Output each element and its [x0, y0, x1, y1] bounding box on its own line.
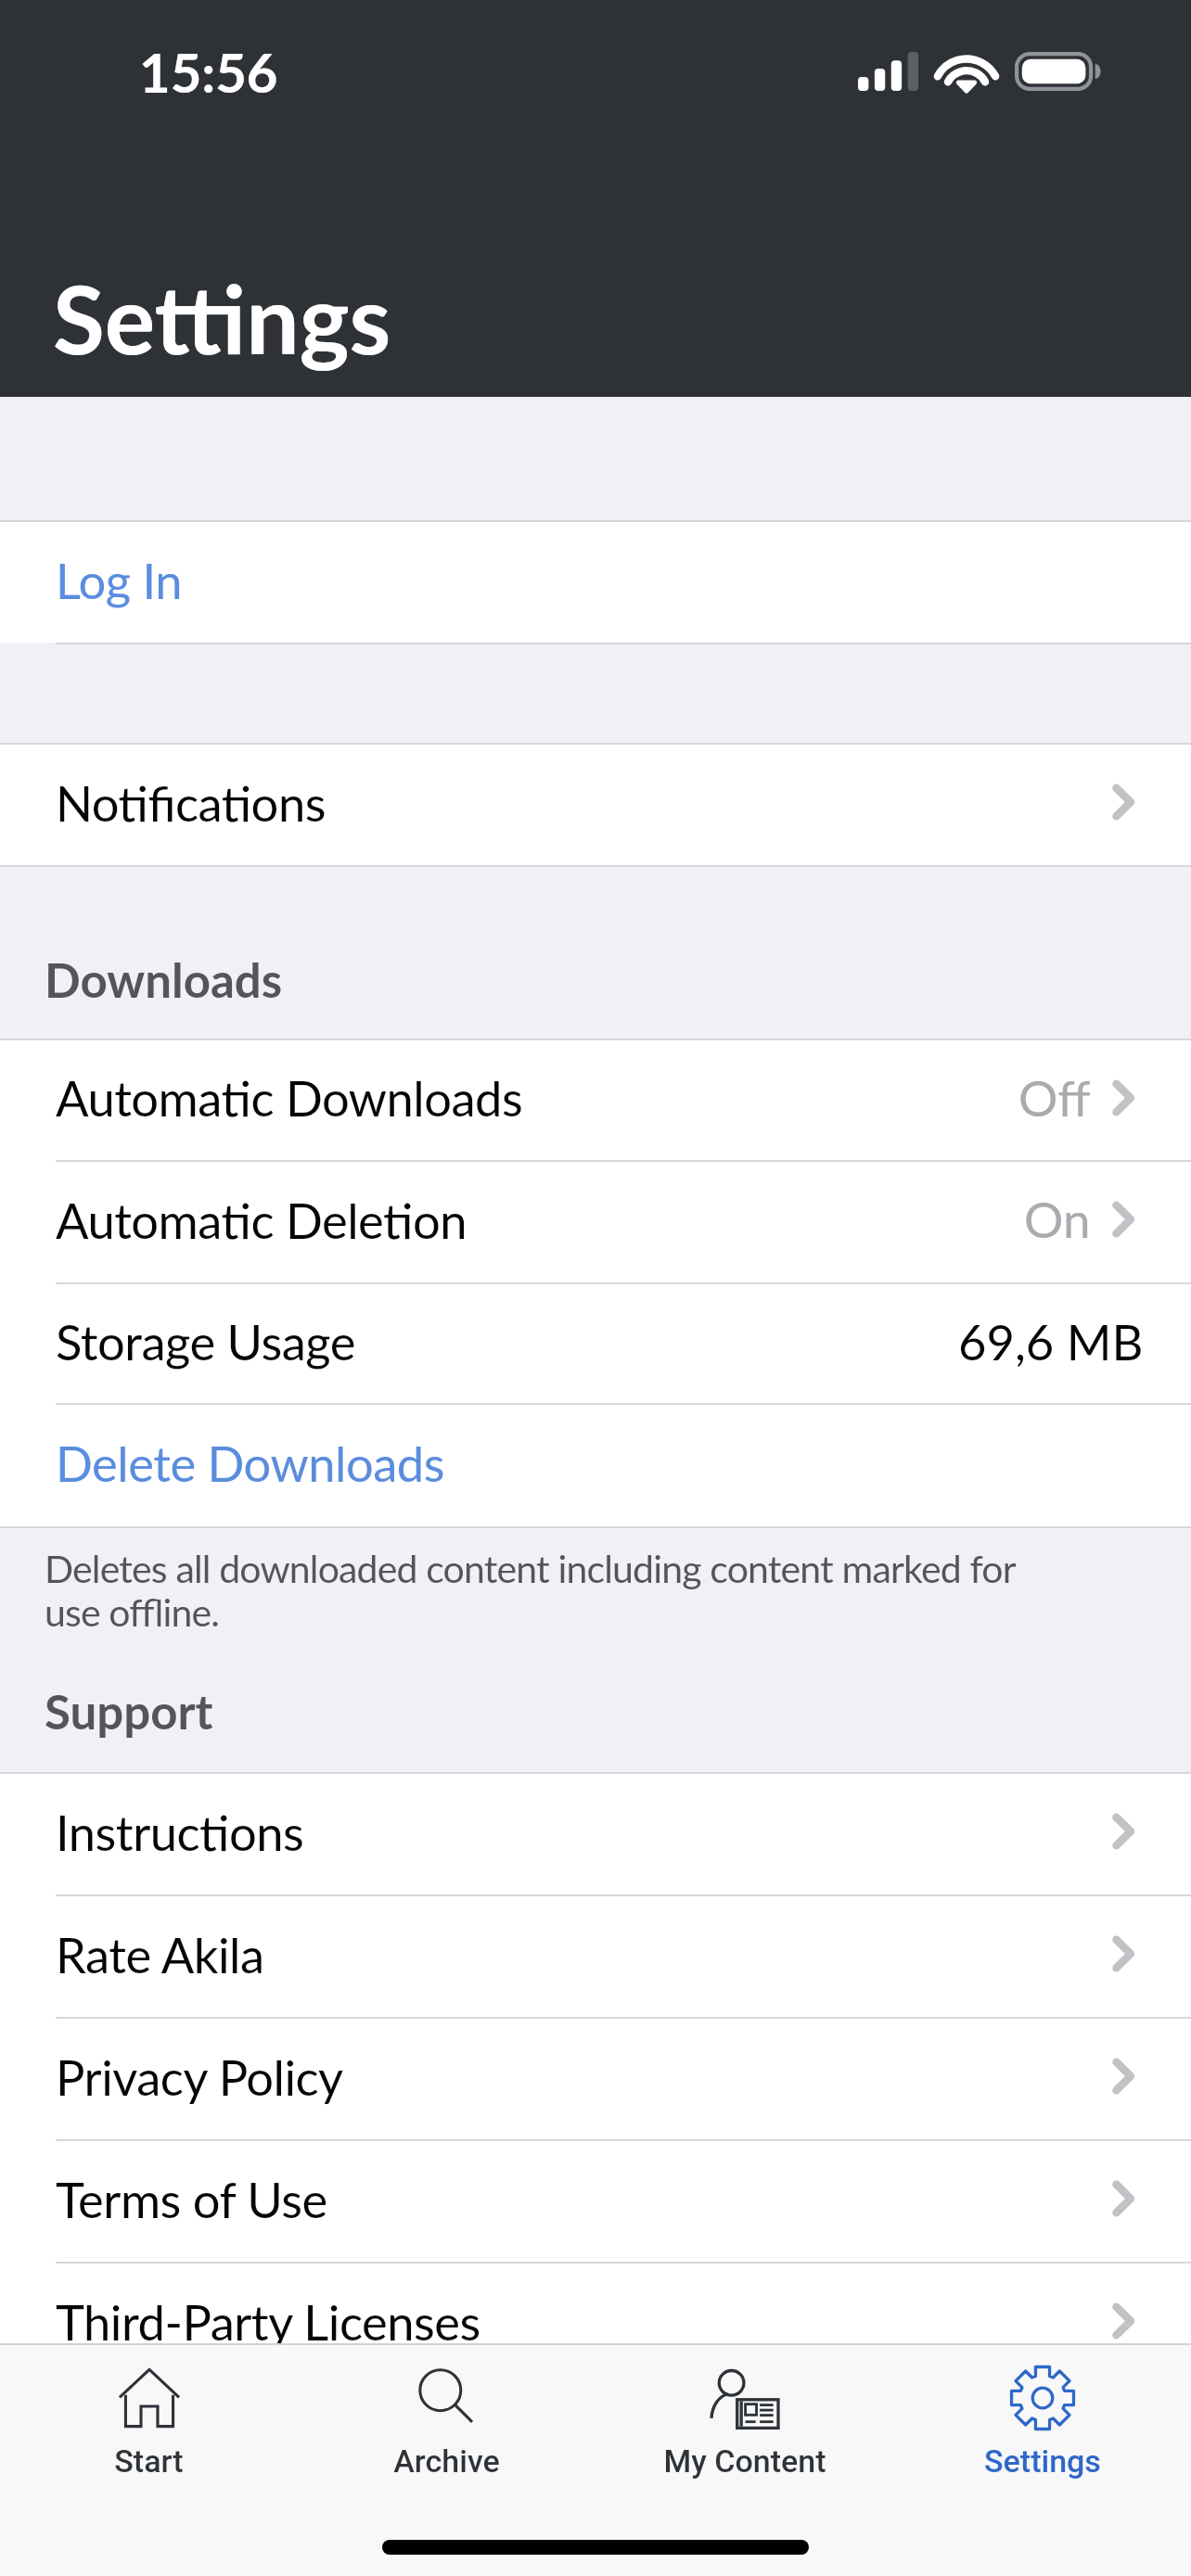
button[interactable]: Third-Party Licenses: [0, 2260, 1191, 2343]
staticText: Settings: [984, 2442, 1101, 2480]
staticText: Archive: [393, 2442, 500, 2480]
staticText: Automatic Deletion: [56, 1191, 467, 1249]
staticText: Third-Party Licenses: [56, 2292, 480, 2343]
staticText: 69,6 MB: [958, 1312, 1144, 1371]
staticText: Notifications: [56, 773, 326, 832]
button[interactable]: Instructions: [0, 1770, 1191, 1893]
staticText: Off: [1018, 1068, 1091, 1128]
staticText: Terms of Use: [56, 2170, 327, 2228]
button[interactable]: Automatic Downloads: [0, 1037, 1191, 1158]
button[interactable]: Start: [0, 2345, 298, 2503]
staticText: Automatic Downloads: [56, 1068, 523, 1127]
staticText: Delete Downloads: [56, 1434, 444, 1492]
staticText: Storage Usage: [56, 1312, 355, 1371]
staticText: Deletes all downloaded content including…: [45, 1546, 1016, 1635]
staticText: Settings: [53, 261, 391, 374]
button[interactable]: Notifications: [0, 741, 1191, 863]
staticText: On: [1024, 1190, 1091, 1249]
button[interactable]: Settings: [893, 2345, 1191, 2503]
button[interactable]: Delete Downloads: [0, 1401, 1191, 1524]
button[interactable]: Log In: [0, 518, 1191, 641]
button[interactable]: Terms of Use: [0, 2137, 1191, 2260]
button[interactable]: Archive: [298, 2345, 595, 2503]
button[interactable]: My Content: [595, 2345, 893, 2503]
staticText: Rate Akila: [56, 1925, 264, 1983]
staticText: Instructions: [56, 1803, 304, 1861]
button[interactable]: Rate Akila: [0, 1893, 1191, 2015]
staticText: Start: [114, 2442, 184, 2480]
button[interactable]: Storage Usage: [0, 1281, 1191, 1401]
staticText: Downloads: [45, 951, 283, 1008]
staticText: 15:56: [139, 40, 278, 105]
button[interactable]: Privacy Policy: [0, 2015, 1191, 2137]
staticText: Support: [45, 1683, 213, 1740]
staticText: Log In: [56, 551, 183, 609]
staticText: My Content: [663, 2442, 826, 2480]
staticText: Privacy Policy: [56, 2047, 343, 2106]
button[interactable]: Automatic Deletion: [0, 1158, 1191, 1281]
